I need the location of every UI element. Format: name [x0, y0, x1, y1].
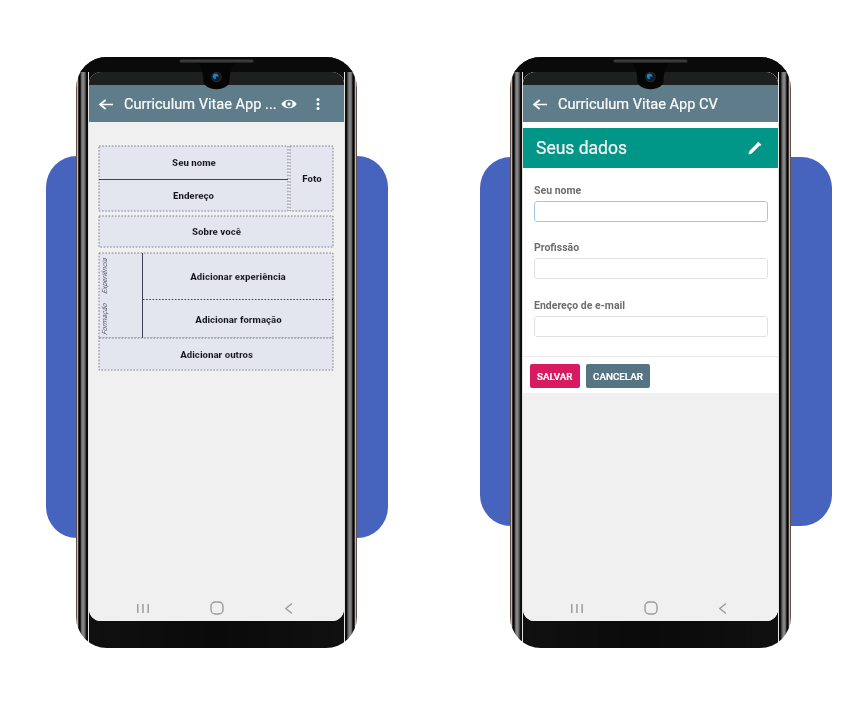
button[interactable]: Seu nome: [99, 146, 288, 179]
staticText: Formação: [100, 303, 108, 335]
button[interactable]: Home: [204, 595, 230, 621]
button[interactable]: Home: [638, 595, 664, 621]
staticText: Adicionar formação: [195, 314, 282, 325]
button[interactable]: Back: [709, 595, 735, 621]
button[interactable]: More options: [309, 95, 327, 113]
button[interactable]: Foto: [290, 146, 333, 211]
staticText: Seu nome: [172, 157, 216, 168]
staticText: Curriculum Vitae App ...: [124, 95, 277, 112]
button[interactable]: [534, 316, 768, 337]
button[interactable]: SALVAR: [530, 364, 580, 388]
button[interactable]: Back: [95, 93, 117, 115]
button[interactable]: [534, 258, 768, 279]
button[interactable]: Sobre você: [99, 216, 333, 247]
staticText: Adicionar outros: [180, 349, 253, 360]
button[interactable]: Adicionar outros: [99, 338, 333, 370]
staticText: Foto: [302, 173, 322, 184]
staticText: Seu nome: [534, 184, 582, 196]
staticText: Adicionar experiência: [190, 271, 286, 282]
staticText: Curriculum Vitae App CV: [558, 95, 718, 112]
button[interactable]: Endereço: [99, 180, 288, 211]
staticText: Endereço: [173, 190, 214, 201]
staticText: Experiência: [100, 258, 108, 294]
button[interactable]: Back: [529, 93, 551, 115]
staticText: Sobre você: [192, 226, 241, 237]
button[interactable]: CANCELAR: [586, 364, 650, 388]
button[interactable]: Back: [275, 595, 301, 621]
staticText: CANCELAR: [593, 371, 643, 382]
button[interactable]: Recent apps: [130, 595, 156, 621]
button[interactable]: Adicionar experiência: [143, 253, 333, 299]
staticText: Seus dados: [536, 138, 627, 159]
button[interactable]: Adicionar formação: [143, 300, 333, 338]
staticText: SALVAR: [537, 371, 573, 382]
button[interactable]: Seus dados: [523, 128, 778, 168]
button[interactable]: [534, 201, 768, 222]
button[interactable]: Edit: [745, 138, 765, 158]
button[interactable]: Preview: [278, 93, 300, 115]
staticText: Profissão: [534, 241, 580, 253]
button[interactable]: Recent apps: [564, 595, 590, 621]
staticText: Endereço de e-mail: [534, 299, 626, 311]
